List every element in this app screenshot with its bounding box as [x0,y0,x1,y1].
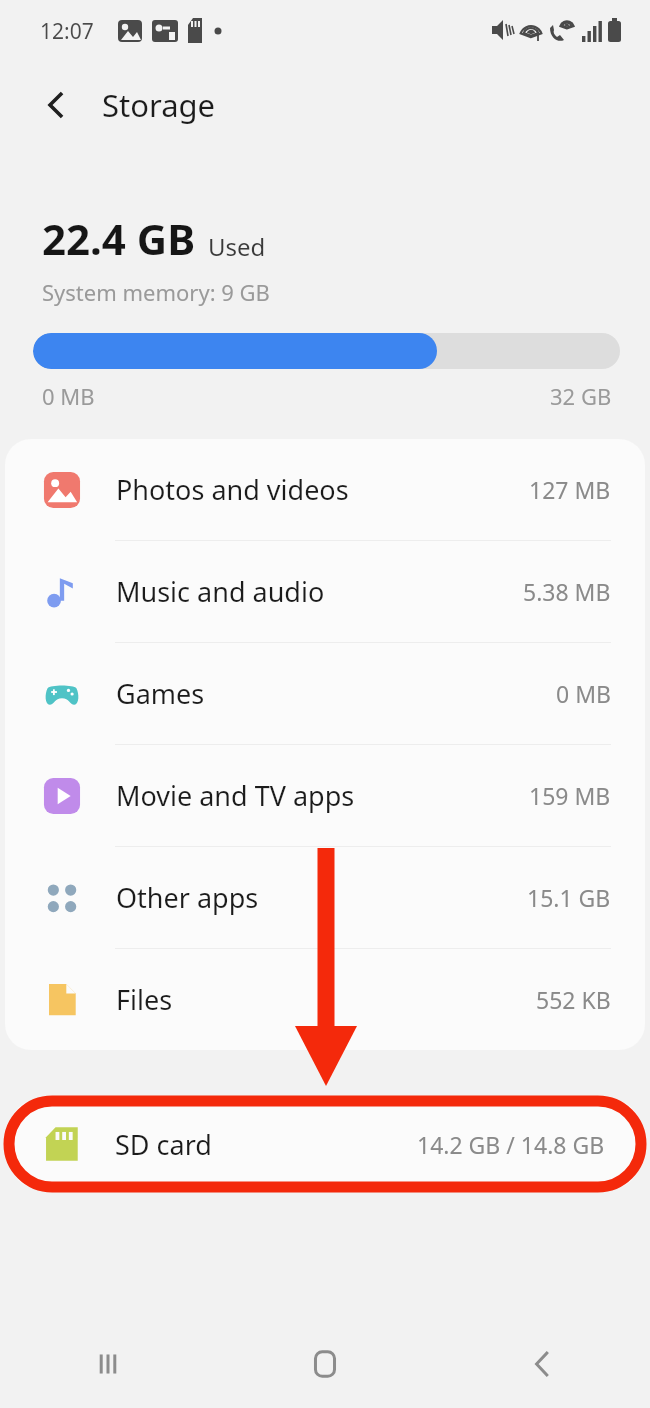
staticText: 32 GB [550,381,612,411]
button[interactable]: Home [216,1320,433,1408]
button[interactable]: Back [433,1320,650,1408]
button[interactable]: SD card [11,1100,639,1188]
button[interactable]: Music and audio [5,541,645,642]
staticText: Files [116,981,173,1018]
button[interactable]: Back [28,77,84,133]
staticText: 127 MB [529,474,611,505]
staticText: 0 MB [42,381,95,411]
button[interactable]: Photos and videos [5,439,645,540]
button[interactable]: Games [5,643,645,744]
button[interactable]: Movie and TV apps [5,745,645,846]
button[interactable]: Recents [0,1320,216,1408]
staticText: 0 MB [556,678,611,709]
staticText: 552 KB [536,984,611,1015]
staticText: 22.4 GB [42,210,196,267]
staticText: SD card [115,1126,212,1163]
staticText: Movie and TV apps [116,777,355,814]
staticText: 15.1 GB [527,882,611,913]
staticText: Photos and videos [116,471,349,508]
staticText: Used [208,230,266,263]
staticText: Other apps [116,879,259,916]
staticText: 159 MB [529,780,611,811]
staticText: Storage [102,84,216,126]
button[interactable]: Other apps [5,847,645,948]
staticText: 5.38 MB [523,576,611,607]
staticText: System memory: 9 GB [42,277,270,307]
staticText: 12:07 [40,17,94,46]
staticText: Games [116,675,205,712]
button[interactable]: Files [5,949,645,1050]
staticText: 14.2 GB / 14.8 GB [417,1129,605,1160]
staticText: Music and audio [116,573,325,610]
